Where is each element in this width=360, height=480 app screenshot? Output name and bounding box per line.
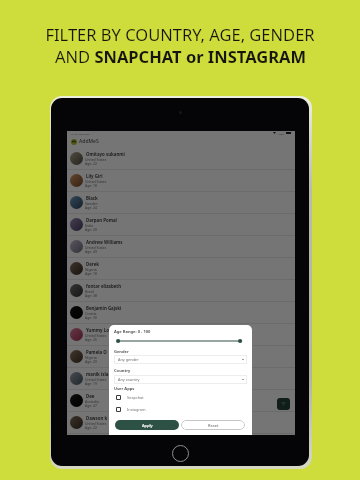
button[interactable]: Snapchat (116, 395, 176, 400)
staticText: United States (85, 421, 107, 426)
staticText: 17:16 Wed 8 Jan (71, 132, 90, 135)
staticText: Dee (86, 393, 95, 399)
staticText: Age: 19 (85, 381, 97, 386)
button[interactable]: Any country (118, 375, 244, 384)
staticText: manik isla (86, 371, 109, 377)
staticText: Derek (86, 261, 100, 267)
staticText: United States (85, 333, 107, 338)
staticText: AND SNAPCHAT or INSTAGRAM (55, 45, 306, 67)
staticText: Black (86, 195, 98, 201)
staticText: FILTER BY COUNTRY, AGE, GENDER (45, 23, 315, 45)
button[interactable]: Dee (67, 390, 295, 412)
staticText: Brazil (85, 289, 94, 294)
staticText: Age: 18 (85, 271, 97, 276)
staticText: United States (85, 245, 107, 250)
staticText: Instagram (127, 407, 146, 412)
staticText: Benjamin Gajski (86, 305, 122, 311)
staticText: Lily Girl (86, 173, 103, 179)
staticText: Nigeria (85, 355, 97, 360)
staticText: Age: 49 (85, 249, 97, 254)
button[interactable]: Dawson k (67, 412, 295, 434)
staticText: Snapchat (127, 395, 144, 400)
staticText: Apply (142, 423, 153, 428)
staticText: Age: 24 (85, 205, 97, 210)
button[interactable]: Yummy Love (67, 324, 295, 346)
staticText: Age: 22 (85, 425, 97, 430)
staticText: Age: 18 (85, 183, 97, 188)
staticText: United States (85, 377, 107, 382)
staticText: Gender (114, 349, 129, 355)
staticText: Age: 47 (85, 403, 97, 408)
staticText: Sweden (85, 201, 98, 206)
staticText: Australia (85, 399, 99, 404)
staticText: Omitayo sukanmi (86, 151, 125, 157)
button[interactable]: Andrew Williams (67, 236, 295, 258)
button[interactable]: Derek (67, 258, 295, 280)
staticText: Reset (208, 423, 219, 428)
staticText: India (85, 223, 94, 228)
button[interactable]: Reset (181, 420, 245, 430)
staticText: Andrew Williams (86, 239, 123, 245)
staticText: Any country (118, 377, 140, 382)
staticText: Pamela O (86, 349, 107, 355)
staticText: Age: 38 (85, 293, 97, 298)
staticText: Darpan Pomal (86, 217, 117, 223)
button[interactable]: manik isla (67, 368, 295, 390)
staticText: fontar elizabeth (86, 283, 122, 289)
staticText: United States (85, 179, 107, 184)
button[interactable]: Lily Girl (67, 170, 295, 192)
button[interactable]: Benjamin Gajski (67, 302, 295, 324)
staticText: Any gender (118, 357, 139, 362)
staticText: 100% (278, 132, 285, 135)
button[interactable]: Pamela O (67, 346, 295, 368)
staticText: Nigeria (85, 267, 97, 272)
staticText: Age: 30 (85, 315, 97, 320)
staticText: Dawson k (86, 415, 108, 421)
staticText: United States (85, 157, 107, 162)
button[interactable]: Apply (115, 420, 179, 430)
staticText: Age: 26 (85, 337, 97, 342)
button[interactable]: Filter (277, 398, 290, 410)
staticText: Age Range: 0 - 100 (114, 329, 151, 335)
button[interactable]: Black (67, 192, 295, 214)
button[interactable]: Instagram (116, 407, 176, 412)
staticText: Yummy Love (86, 327, 114, 333)
staticText: Age: 20 (85, 227, 97, 232)
button[interactable]: Darpan Pomal (67, 214, 295, 236)
button[interactable]: Any gender (118, 355, 244, 364)
staticText: Country (114, 368, 131, 374)
button[interactable]: Omitayo sukanmi (67, 148, 295, 170)
staticText: Croatia (85, 311, 97, 316)
staticText: Age: 20 (85, 359, 97, 364)
staticText: Age: 22 (85, 161, 97, 166)
staticText: User Apps (114, 386, 135, 392)
staticText: AddMeS (79, 138, 99, 145)
button[interactable]: fontar elizabeth (67, 280, 295, 302)
